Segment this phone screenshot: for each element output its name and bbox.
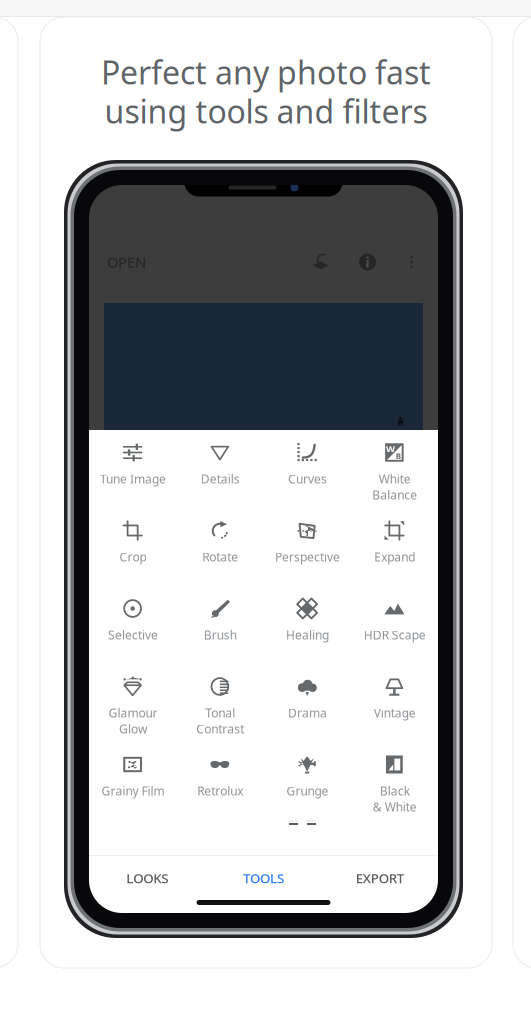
- staticText: LOOKS: [126, 869, 168, 887]
- button[interactable]: OPEN: [101, 246, 152, 278]
- staticText: Tune Image: [100, 471, 166, 487]
- button[interactable]: LOOKS: [89, 856, 205, 900]
- staticText: Tonal Contrast: [196, 705, 244, 737]
- button[interactable]: Grainy Film: [89, 742, 176, 820]
- button[interactable]: Crop: [89, 508, 176, 586]
- button[interactable]: Details: [176, 430, 263, 508]
- button[interactable]: Expand: [351, 508, 438, 586]
- staticText: Brush: [203, 627, 236, 643]
- staticText: Crop: [119, 549, 146, 565]
- staticText: TOOLS: [243, 869, 284, 887]
- button[interactable]: Curves: [263, 430, 351, 508]
- button[interactable]: Retrolux: [176, 742, 263, 820]
- button[interactable]: Layers: [305, 246, 336, 277]
- staticText: W: [386, 442, 395, 455]
- staticText: Retrolux: [197, 783, 243, 799]
- button[interactable]: Tune Image: [89, 430, 176, 508]
- staticText: Rotate: [202, 549, 238, 565]
- staticText: White Balance: [372, 471, 417, 503]
- button[interactable]: Brush: [176, 586, 263, 664]
- staticText: OPEN: [107, 252, 146, 272]
- staticText: Vintage: [373, 705, 415, 721]
- button[interactable]: Healing: [263, 586, 351, 664]
- button[interactable]: Rotate: [176, 508, 263, 586]
- button[interactable]: Black & White: [351, 742, 438, 820]
- staticText: Selective: [108, 627, 158, 643]
- staticText: Grunge: [286, 783, 328, 799]
- button[interactable]: Perspective: [263, 508, 351, 586]
- staticText: Details: [200, 471, 239, 487]
- staticText: Perspective: [275, 549, 340, 565]
- staticText: Glamour Glow: [108, 705, 157, 737]
- staticText: Healing: [286, 627, 329, 643]
- button[interactable]: Grunge: [263, 742, 351, 820]
- button[interactable]: Tonal Contrast: [176, 664, 263, 742]
- staticText: Curves: [288, 471, 327, 487]
- staticText: EXPORT: [356, 869, 404, 887]
- button[interactable]: Selective: [89, 586, 176, 664]
- button[interactable]: Vintage: [351, 664, 438, 742]
- staticText: Perfect any photo fast: [101, 51, 431, 93]
- button[interactable]: Glamour Glow: [89, 664, 176, 742]
- button[interactable]: EXPORT: [322, 856, 438, 900]
- button[interactable]: Drama: [263, 664, 351, 742]
- staticText: using tools and filters: [104, 90, 427, 132]
- button[interactable]: W: [351, 430, 438, 508]
- staticText: Black & White: [372, 783, 416, 815]
- staticText: Drama: [288, 705, 327, 721]
- button[interactable]: HDR Scape: [351, 586, 438, 664]
- staticText: B: [396, 451, 401, 462]
- staticText: HDR Scape: [363, 627, 425, 643]
- button[interactable]: TOOLS: [205, 856, 322, 900]
- staticText: Expand: [374, 549, 415, 565]
- button[interactable]: Info: [352, 246, 383, 277]
- staticText: Grainy Film: [101, 783, 164, 799]
